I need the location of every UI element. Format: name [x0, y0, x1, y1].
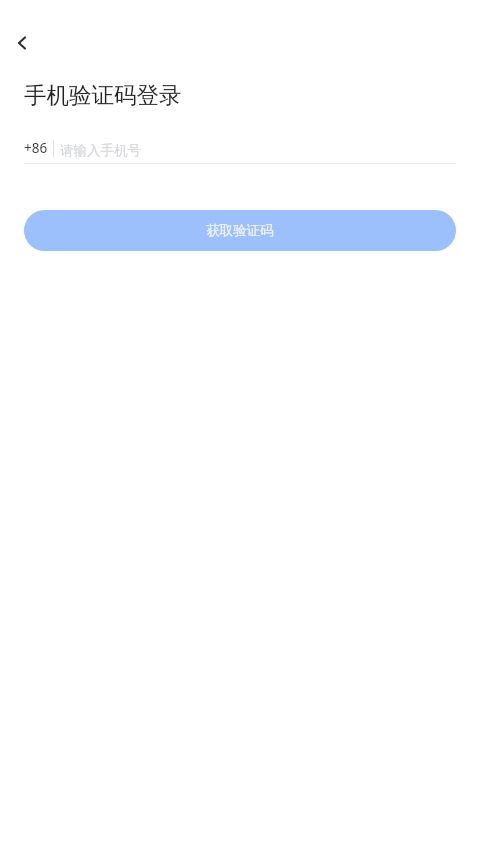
staticText: +86 [24, 139, 48, 157]
staticText: 获取验证码 [206, 222, 274, 239]
button[interactable]: 获取验证码 [24, 210, 456, 251]
staticText: 手机验证码登录 [24, 81, 182, 109]
button[interactable]: +86 [24, 139, 48, 157]
button[interactable]: Back [6, 27, 38, 59]
staticText: 请输入手机号 [60, 142, 141, 159]
button[interactable]: 请输入手机号 [60, 140, 456, 160]
